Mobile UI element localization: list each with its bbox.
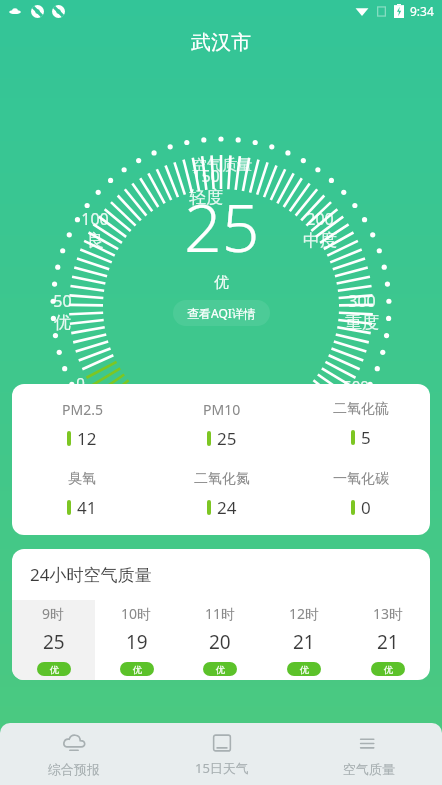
staticText: 10时 xyxy=(121,604,152,623)
staticText: 二氧化硫 xyxy=(333,400,389,418)
staticText: 空气质量 xyxy=(343,761,395,777)
staticText: 优 xyxy=(50,664,59,675)
staticText: 5 xyxy=(361,426,371,449)
button[interactable]: PM2.5 xyxy=(12,400,152,450)
staticText: 21 xyxy=(293,629,315,655)
staticText: 优 xyxy=(133,664,142,675)
staticText: 12 xyxy=(77,427,97,450)
staticText: 12时 xyxy=(289,604,320,623)
staticText: 一氧化碳 xyxy=(333,470,389,488)
button[interactable]: 综合预报 xyxy=(0,723,148,785)
staticText: 优 xyxy=(54,312,71,333)
button[interactable]: 10时 xyxy=(95,600,178,680)
staticText: 50 xyxy=(53,290,72,312)
staticText: 优 xyxy=(300,664,309,675)
button[interactable]: 一氧化碳 xyxy=(291,470,430,519)
staticText: 25 xyxy=(217,427,237,450)
staticText: 25 xyxy=(43,629,65,655)
button[interactable]: 二氧化氮 xyxy=(152,470,291,519)
button[interactable]: 二氧化硫 xyxy=(291,400,430,449)
staticText: 11时 xyxy=(205,604,236,623)
staticText: 500 xyxy=(343,375,369,395)
button[interactable]: 13时 xyxy=(346,600,430,680)
staticText: 25 xyxy=(184,181,260,271)
staticText: 21 xyxy=(377,629,399,655)
staticText: 15日天气 xyxy=(195,759,249,777)
staticText: 严重 xyxy=(339,395,373,416)
staticText: 150 xyxy=(192,165,220,187)
button[interactable]: 9时 xyxy=(12,600,95,680)
staticText: 优 xyxy=(216,664,225,675)
staticText: 0 xyxy=(76,372,85,392)
staticText: 中度 xyxy=(303,230,337,251)
staticText: PM10 xyxy=(203,400,241,419)
staticText: 24 xyxy=(217,496,237,519)
staticText: 臭氧 xyxy=(68,470,96,488)
staticText: 轻度 xyxy=(189,187,223,208)
button[interactable]: 空气质量 xyxy=(295,723,442,785)
button[interactable]: 臭氧 xyxy=(12,470,152,519)
staticText: 综合预报 xyxy=(48,761,100,777)
staticText: 二氧化氮 xyxy=(194,470,250,488)
staticText: 重度 xyxy=(345,312,379,333)
staticText: 武汉市 xyxy=(191,30,251,55)
staticText: 41 xyxy=(77,496,97,519)
staticText: 优 xyxy=(384,664,393,675)
button[interactable]: 查看AQI详情 xyxy=(173,300,270,326)
staticText: 100 xyxy=(81,208,109,230)
staticText: 13时 xyxy=(373,604,404,623)
staticText: 9时 xyxy=(42,604,65,623)
staticText: PM2.5 xyxy=(62,400,103,419)
staticText: 查看AQI详情 xyxy=(187,305,256,321)
staticText: 24小时空气质量 xyxy=(30,563,152,586)
staticText: 优 xyxy=(214,273,229,292)
button[interactable]: 12时 xyxy=(262,600,346,680)
staticText: 0 xyxy=(361,496,371,519)
staticText: 9:34 xyxy=(410,3,434,19)
staticText: 健康 xyxy=(63,392,97,413)
staticText: 空气质量 xyxy=(192,156,252,175)
staticText: 300 xyxy=(348,290,376,312)
button[interactable]: 15日天气 xyxy=(148,723,295,785)
staticText: 20 xyxy=(209,629,231,655)
button[interactable]: PM10 xyxy=(152,400,291,450)
staticText: 200 xyxy=(306,208,334,230)
button[interactable]: 11时 xyxy=(178,600,262,680)
staticText: 19 xyxy=(126,629,148,655)
staticText: 良 xyxy=(87,230,104,251)
